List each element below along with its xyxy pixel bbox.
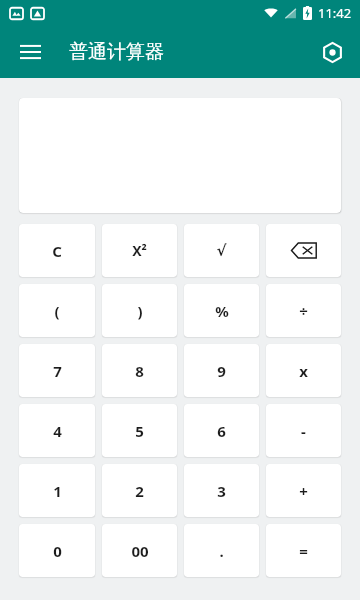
- staticText: X²: [132, 241, 147, 260]
- button[interactable]: ÷: [266, 284, 341, 337]
- button[interactable]: =: [266, 524, 341, 577]
- staticText: C: [52, 241, 62, 261]
- staticText: 9: [217, 361, 226, 381]
- staticText: 8: [135, 361, 144, 381]
- staticText: 6: [217, 421, 226, 441]
- button[interactable]: Menu: [10, 32, 50, 72]
- button[interactable]: √: [184, 224, 259, 277]
- staticText: ÷: [299, 301, 308, 321]
- staticText: 0: [53, 541, 62, 561]
- staticText: =: [299, 541, 308, 561]
- staticText: 5: [135, 421, 144, 441]
- staticText: +: [299, 481, 308, 501]
- button[interactable]: (: [19, 284, 95, 337]
- button[interactable]: C: [19, 224, 95, 277]
- button[interactable]: 2: [102, 464, 177, 517]
- staticText: 1: [53, 481, 62, 501]
- button[interactable]: 8: [102, 344, 177, 397]
- button[interactable]: 9: [184, 344, 259, 397]
- button[interactable]: X²: [102, 224, 177, 277]
- button[interactable]: 00: [102, 524, 177, 577]
- staticText: .: [219, 541, 224, 561]
- button[interactable]: 0: [19, 524, 95, 577]
- staticText: x: [299, 361, 308, 381]
- staticText: %: [215, 301, 229, 321]
- button[interactable]: 3: [184, 464, 259, 517]
- staticText: 2: [135, 481, 144, 501]
- button[interactable]: -: [266, 404, 341, 457]
- staticText: 普通计算器: [69, 40, 164, 64]
- staticText: √: [216, 242, 227, 259]
- button[interactable]: .: [184, 524, 259, 577]
- staticText: 11:42: [318, 4, 352, 22]
- button[interactable]: %: [184, 284, 259, 337]
- button[interactable]: x: [266, 344, 341, 397]
- button[interactable]: ): [102, 284, 177, 337]
- staticText: 00: [131, 541, 149, 561]
- button[interactable]: Backspace: [266, 224, 341, 277]
- button[interactable]: 1: [19, 464, 95, 517]
- staticText: 3: [217, 481, 226, 501]
- staticText: -: [301, 421, 306, 441]
- staticText: ): [137, 301, 143, 321]
- button[interactable]: 6: [184, 404, 259, 457]
- staticText: 7: [53, 361, 62, 381]
- button[interactable]: 5: [102, 404, 177, 457]
- staticText: 4: [53, 421, 62, 441]
- button[interactable]: Settings: [312, 32, 352, 72]
- button[interactable]: +: [266, 464, 341, 517]
- button[interactable]: 4: [19, 404, 95, 457]
- staticText: (: [54, 301, 60, 321]
- button[interactable]: 7: [19, 344, 95, 397]
